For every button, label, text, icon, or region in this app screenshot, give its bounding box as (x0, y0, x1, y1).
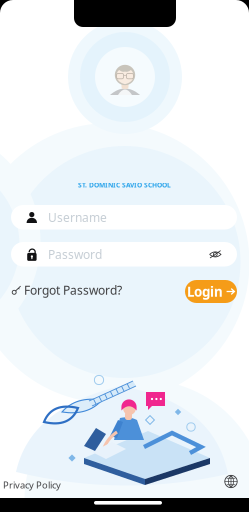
staticText: ST. DOMINIC SAVIO SCHOOL (78, 181, 171, 189)
button[interactable]: Language (224, 475, 237, 488)
button[interactable]: Forgot Password? (11, 280, 125, 300)
staticText: Privacy Policy (3, 479, 61, 491)
staticText: Password (48, 246, 102, 262)
button[interactable]: Login (185, 280, 237, 303)
button[interactable]: Privacy Policy (3, 478, 65, 492)
staticText: Forgot Password? (24, 282, 122, 298)
staticText: Login (187, 283, 223, 300)
button[interactable]: Username (11, 205, 237, 229)
button[interactable]: Password (11, 242, 237, 266)
staticText: Username (48, 209, 107, 225)
